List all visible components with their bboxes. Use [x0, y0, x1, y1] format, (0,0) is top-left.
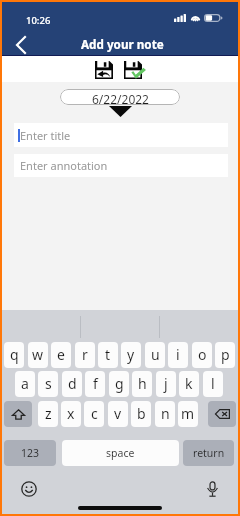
- staticText: u: [151, 345, 160, 364]
- staticText: t: [105, 345, 111, 364]
- button[interactable]: return: [183, 440, 234, 466]
- staticText: d: [68, 374, 77, 393]
- button[interactable]: o: [192, 342, 212, 368]
- staticText: Enter title: [20, 128, 71, 143]
- button[interactable]: h: [132, 371, 152, 397]
- staticText: o: [198, 345, 207, 364]
- button[interactable]: r: [75, 342, 95, 368]
- button[interactable]: s: [38, 371, 58, 397]
- button[interactable]: Enter annotation: [14, 154, 228, 177]
- staticText: h: [138, 374, 147, 393]
- staticText: i: [176, 345, 180, 364]
- button[interactable]: Back: [8, 32, 34, 58]
- button[interactable]: Voice input: [202, 478, 223, 499]
- staticText: b: [137, 404, 146, 423]
- button[interactable]: a: [15, 371, 35, 397]
- staticText: q: [10, 345, 19, 364]
- button[interactable]: k: [179, 371, 199, 397]
- button[interactable]: q: [4, 342, 24, 368]
- staticText: Add your note: [81, 36, 164, 52]
- staticText: 10:26: [26, 14, 51, 27]
- button[interactable]: w: [28, 342, 48, 368]
- button[interactable]: l: [203, 371, 223, 397]
- button[interactable]: p: [215, 342, 235, 368]
- button[interactable]: 6/22/2022: [60, 89, 180, 105]
- button[interactable]: d: [62, 371, 82, 397]
- button[interactable]: x: [61, 401, 81, 427]
- button[interactable]: b: [131, 401, 151, 427]
- button[interactable]: Save: [120, 58, 146, 82]
- button[interactable]: u: [145, 342, 165, 368]
- staticText: w: [32, 345, 44, 364]
- staticText: s: [45, 374, 52, 393]
- staticText: z: [45, 404, 52, 423]
- button[interactable]: z: [38, 401, 58, 427]
- staticText: x: [67, 404, 75, 423]
- staticText: y: [127, 345, 135, 364]
- staticText: c: [91, 404, 98, 423]
- button[interactable]: space: [62, 440, 179, 466]
- button[interactable]: e: [51, 342, 71, 368]
- staticText: space: [106, 446, 135, 460]
- button[interactable]: m: [178, 401, 198, 427]
- staticText: v: [114, 404, 122, 423]
- button[interactable]: g: [109, 371, 129, 397]
- staticText: e: [57, 345, 65, 364]
- staticText: j: [164, 374, 168, 393]
- staticText: r: [82, 345, 88, 364]
- staticText: return: [193, 446, 225, 460]
- staticText: n: [161, 404, 170, 423]
- staticText: 123: [21, 446, 40, 460]
- button[interactable]: Emoji keyboard: [18, 478, 39, 499]
- staticText: p: [221, 345, 230, 364]
- button[interactable]: i: [168, 342, 188, 368]
- staticText: a: [21, 374, 29, 393]
- button[interactable]: t: [98, 342, 118, 368]
- staticText: k: [185, 374, 193, 393]
- staticText: l: [211, 374, 215, 393]
- button[interactable]: Enter title: [14, 123, 228, 147]
- staticText: f: [93, 374, 98, 393]
- button[interactable]: 123: [4, 440, 56, 466]
- button[interactable]: n: [155, 401, 175, 427]
- staticText: 6/22/2022: [92, 91, 149, 105]
- button[interactable]: Save and exit: [91, 58, 117, 82]
- button[interactable]: y: [121, 342, 141, 368]
- button[interactable]: j: [156, 371, 176, 397]
- button[interactable]: Backspace: [208, 401, 236, 427]
- button[interactable]: f: [85, 371, 105, 397]
- button[interactable]: Shift: [4, 401, 32, 427]
- staticText: m: [181, 404, 195, 423]
- staticText: g: [115, 374, 124, 393]
- button[interactable]: v: [108, 401, 128, 427]
- button[interactable]: c: [84, 401, 104, 427]
- staticText: Enter annotation: [20, 158, 108, 173]
